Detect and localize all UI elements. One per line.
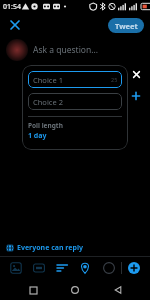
button[interactable]: Recents xyxy=(23,280,43,300)
staticText: Poll length xyxy=(28,121,63,130)
button[interactable]: Everyone can reply xyxy=(6,240,150,256)
staticText: Tweet xyxy=(115,21,138,31)
staticText: Everyone can reply xyxy=(17,243,83,253)
button[interactable]: Add GIF xyxy=(27,256,50,280)
staticText: Choice 2 xyxy=(33,97,63,107)
button[interactable]: Add tweet xyxy=(122,256,146,280)
button[interactable]: Character count xyxy=(97,256,121,280)
button[interactable]: Close xyxy=(6,16,24,34)
staticText: 25 xyxy=(111,76,118,83)
button[interactable]: Poll length xyxy=(28,121,63,141)
staticText: Ask a question... xyxy=(33,44,99,56)
button[interactable]: Choice 1 xyxy=(28,71,122,88)
staticText: 01:54 xyxy=(3,2,21,12)
staticText: Choice 1 xyxy=(33,75,63,85)
button[interactable]: Add choice xyxy=(129,89,143,103)
button[interactable]: Remove choice xyxy=(129,67,143,81)
button[interactable]: Back xyxy=(108,280,128,300)
button[interactable]: Ask a question... xyxy=(33,44,150,56)
staticText: 1 day xyxy=(28,131,47,141)
button[interactable]: Home xyxy=(65,280,85,300)
button[interactable]: Add poll xyxy=(50,256,73,280)
button[interactable]: Choice 2 xyxy=(28,93,122,110)
button[interactable]: Profile picture xyxy=(6,39,28,61)
button[interactable]: Add location xyxy=(73,256,97,280)
button[interactable]: Tweet xyxy=(108,18,144,33)
button[interactable]: Add photo xyxy=(4,256,27,280)
